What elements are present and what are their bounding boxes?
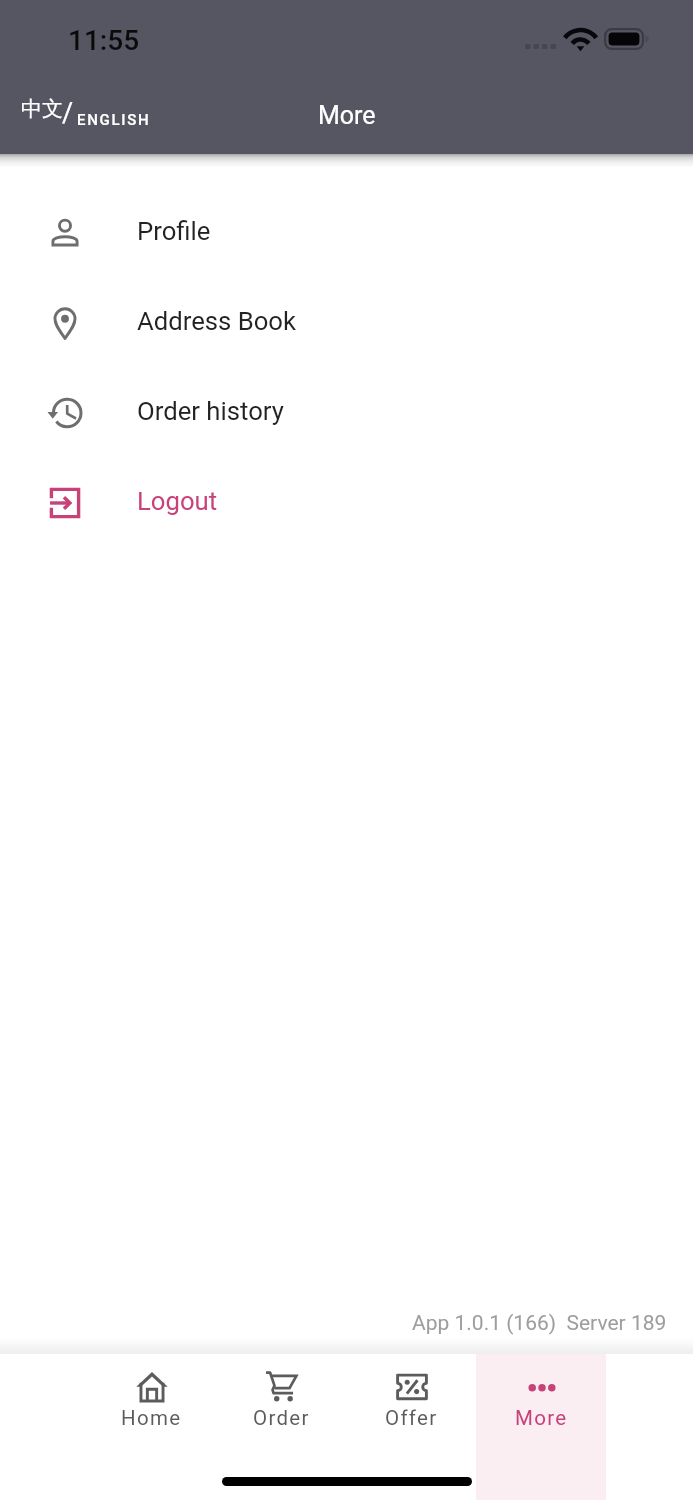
staticText: More (515, 1406, 568, 1430)
staticText: Address Book (137, 306, 297, 336)
staticText: More (318, 101, 376, 130)
staticText: Offer (385, 1406, 438, 1430)
staticText: / (62, 97, 74, 129)
button[interactable]: Address Book (0, 278, 693, 368)
staticText: Order history (137, 396, 284, 426)
staticText: Logout (137, 486, 218, 516)
button[interactable]: Home (86, 1354, 216, 1500)
button[interactable]: 中文 (14, 94, 156, 138)
button[interactable]: Order (216, 1354, 346, 1500)
staticText: 11:55 (68, 24, 140, 57)
staticText: 中文 (21, 96, 63, 122)
button[interactable]: Order history (0, 368, 693, 458)
button[interactable]: Profile (0, 188, 693, 278)
staticText: Profile (137, 216, 211, 246)
staticText: Order (253, 1406, 310, 1430)
staticText: Home (121, 1406, 182, 1430)
button[interactable]: Offer (346, 1354, 476, 1500)
staticText: App 1.0.1 (166) Server 189 (412, 1311, 667, 1336)
button[interactable]: Logout (0, 458, 693, 548)
button[interactable]: More (476, 1354, 606, 1500)
staticText: ENGLISH (77, 111, 151, 129)
